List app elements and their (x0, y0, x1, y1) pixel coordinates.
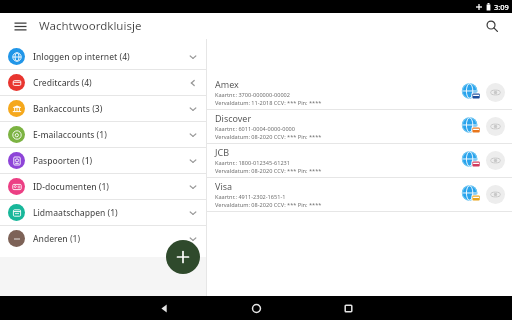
button[interactable]: Discover (207, 110, 512, 143)
button[interactable]: Show details (486, 185, 505, 204)
staticText: E-mailaccounts (1) (33, 129, 188, 141)
staticText: 3:09 (494, 2, 509, 12)
button[interactable]: Open navigation menu (9, 15, 31, 37)
staticText: Vervaldatum: 08-2020 CCV: *** Pin: **** (215, 167, 322, 175)
staticText: JCB (215, 146, 229, 158)
button[interactable]: Recent apps (302, 296, 394, 320)
button[interactable]: Lidmaatschappen (1) (0, 200, 206, 225)
staticText: Discover (215, 112, 252, 124)
button[interactable]: JCB (207, 144, 512, 177)
button[interactable]: Paspoorten (1) (0, 148, 206, 173)
staticText: Wachtwoordkluisje (39, 18, 142, 34)
staticText: Kaartnr.: 3700-000000-00002 (215, 91, 290, 99)
staticText: Creditcards (4) (33, 77, 188, 89)
button[interactable]: Inloggen op internet (4) (0, 44, 206, 69)
button[interactable]: Home (210, 296, 302, 320)
staticText: Kaartnr.: 1800-012345-61231 (215, 159, 290, 167)
button[interactable]: Show details (486, 83, 505, 102)
staticText: Kaartnr.: 4911-2302-1651-1 (215, 193, 286, 201)
button[interactable]: ID-documenten (1) (0, 174, 206, 199)
button[interactable]: Open website (461, 116, 482, 137)
staticText: Lidmaatschappen (1) (33, 207, 188, 219)
button[interactable]: Add entry (166, 240, 200, 274)
staticText: ID-documenten (1) (33, 181, 188, 193)
button[interactable]: Open website (461, 150, 482, 171)
button[interactable]: Open website (461, 184, 482, 205)
button[interactable]: Open website (461, 82, 482, 103)
button[interactable]: Amex (207, 76, 512, 109)
staticText: Paspoorten (1) (33, 155, 188, 167)
button[interactable]: E-mailaccounts (1) (0, 122, 206, 147)
button[interactable]: Creditcards (4) (0, 70, 206, 95)
button[interactable]: Back (118, 296, 210, 320)
button[interactable]: Bankaccounts (3) (0, 96, 206, 121)
staticText: Kaartnr.: 6011-0004-0000-0000 (215, 125, 295, 133)
staticText: Vervaldatum: 08-2020 CCV: *** Pin: **** (215, 133, 322, 141)
button[interactable]: Show details (486, 117, 505, 136)
button[interactable]: Show details (486, 151, 505, 170)
staticText: Vervaldatum: 08-2020 CCV: *** Pin: **** (215, 201, 322, 209)
staticText: Amex (215, 78, 239, 90)
button[interactable]: Visa (207, 178, 512, 211)
staticText: Visa (215, 180, 233, 192)
button[interactable]: Search (481, 15, 503, 37)
staticText: Vervaldatum: 11-2018 CCV: *** Pin: **** (215, 99, 322, 107)
staticText: Bankaccounts (3) (33, 103, 188, 115)
button[interactable]: Anderen (1) (0, 226, 206, 251)
staticText: Anderen (1) (33, 233, 188, 245)
staticText: Inloggen op internet (4) (33, 51, 188, 63)
